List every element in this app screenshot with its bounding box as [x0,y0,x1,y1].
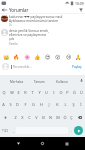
button[interactable]: Shift [0,111,11,124]
staticText: A [2,102,5,107]
staticText: T [31,90,34,95]
button[interactable]: 😢 [65,53,72,60]
staticText: P [66,90,69,95]
button[interactable]: Ç [68,111,75,124]
button[interactable]: Back [0,6,9,14]
staticText: J [48,102,50,107]
staticText: V [35,115,38,120]
button[interactable]: G [29,98,37,111]
button[interactable]: X [19,111,26,124]
button[interactable]: H [37,98,45,111]
button[interactable]: 😮 [54,53,61,60]
staticText: Ç [70,115,73,120]
button[interactable]: S [7,98,14,111]
staticText: O [59,90,63,95]
button[interactable]: Tamam [33,80,46,84]
staticText: Paylaş [72,65,82,69]
button[interactable]: 🔥 [13,53,20,60]
staticText: Z [14,115,17,120]
button[interactable]: Ö [61,111,68,124]
button[interactable]: Voice input [78,75,85,86]
button[interactable]: Ü [78,86,85,98]
button[interactable]: P [64,86,71,98]
button[interactable]: Backspace [75,111,85,124]
button[interactable]: Ğ [71,86,78,98]
staticText: 🔥 [13,54,20,60]
staticText: R [24,90,27,95]
staticText: S [9,102,12,107]
staticText: H [40,102,43,107]
staticText: 😍 [45,54,51,60]
staticText: Q [2,90,6,95]
button[interactable]: İ [77,98,85,111]
staticText: Ş [72,102,75,107]
staticText: ellerinize ve paylaşımınız [9,33,46,37]
button[interactable]: Z [11,111,19,124]
staticText: 2s [9,23,12,27]
staticText: . [71,128,72,133]
staticText: Yorum ekle... [13,65,32,69]
button[interactable]: B [40,111,47,124]
button[interactable]: E [15,86,22,98]
staticText: 😮 [55,54,61,60]
staticText: K [56,102,59,107]
staticText: U [45,90,48,95]
button[interactable]: L [61,98,69,111]
button[interactable]: 🙏 [75,53,82,60]
button[interactable]: ?123 [0,124,10,137]
button[interactable]: D [14,98,21,111]
staticText: , [13,128,14,133]
button[interactable]: O [57,86,64,98]
staticText: Ü [80,90,83,95]
staticText: kadunnar ❤️❤️ paylaşıyorsunuz nasıl [9,15,63,19]
button[interactable]: 👍 [34,53,41,60]
button[interactable]: Kullanıcı [55,80,70,84]
staticText: 🙏 [75,54,82,60]
button[interactable]: 🌸 [24,53,31,60]
staticText: G [32,102,35,107]
staticText: Ö [63,115,67,120]
button[interactable]: 😍 [44,53,51,60]
button[interactable]: 👑 [3,53,10,60]
button[interactable]: Sort comments [76,6,85,14]
button[interactable]: U [43,86,50,98]
button[interactable]: Recent apps [61,138,72,149]
staticText: Tamam [34,80,45,84]
button[interactable]: C [26,111,33,124]
button[interactable]: T [29,86,36,98]
button[interactable]: Y [36,86,43,98]
button[interactable]: Q [0,86,8,98]
staticText: 😢 [66,54,72,60]
staticText: Merhaba [10,80,24,84]
button[interactable]: K [53,98,61,111]
button[interactable]: W [8,86,15,98]
staticText: 👑 [3,54,10,60]
button[interactable]: Home [37,138,48,149]
button[interactable]: I [50,86,57,98]
button[interactable]: M [54,111,61,124]
staticText: çok [9,37,15,41]
button[interactable]: Back [13,138,24,149]
staticText: Yorumlar [9,7,29,13]
staticText: Ğ [73,90,76,95]
button[interactable]: Merhaba [9,80,25,84]
staticText: W [10,90,14,95]
staticText: ?123 [2,129,8,133]
button[interactable]: Send [74,126,83,135]
staticText: I [53,90,55,95]
button[interactable]: Ş [69,98,77,111]
staticText: 10:09 [75,1,84,6]
staticText: Ayıklasanız mümkünümü tanıtım [9,19,59,23]
button[interactable]: R [22,86,29,98]
staticText: Kullanıcı [56,80,69,84]
button[interactable]: A [0,98,7,111]
button[interactable]: F [21,98,29,111]
button[interactable]: J [45,98,53,111]
staticText: F [24,102,27,107]
button[interactable]: V [33,111,40,124]
button[interactable]: , [10,124,16,137]
button[interactable]: N [47,111,54,124]
button[interactable]: Paylaş [71,64,83,70]
